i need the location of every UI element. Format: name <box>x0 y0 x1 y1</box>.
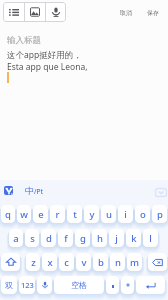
button[interactable]: e <box>33 205 48 223</box>
staticText: k <box>131 232 137 245</box>
button[interactable]: j <box>109 229 124 247</box>
button[interactable]: Comma <box>106 276 119 294</box>
button[interactable]: 取消 <box>117 7 135 19</box>
staticText: f <box>64 232 68 245</box>
button[interactable]: c <box>59 253 74 271</box>
button[interactable]: q <box>1 205 15 223</box>
button[interactable]: Enter <box>136 276 165 294</box>
staticText: m <box>130 256 139 269</box>
button[interactable]: r <box>50 205 65 223</box>
staticText: h <box>97 232 103 245</box>
button[interactable]: g <box>75 229 90 247</box>
staticText: 输入标题 <box>7 35 41 46</box>
staticText: a <box>13 232 19 245</box>
staticText: q <box>5 208 11 221</box>
button[interactable]: Numbers <box>19 276 35 294</box>
staticText: y <box>89 208 95 221</box>
staticText: s <box>30 232 35 245</box>
button[interactable]: x <box>42 253 57 271</box>
staticText: 保存 <box>147 9 159 17</box>
button[interactable]: Backspace <box>148 253 167 271</box>
button[interactable]: a <box>9 229 23 247</box>
staticText: l <box>149 232 152 245</box>
staticText: o <box>140 208 146 221</box>
button[interactable]: Voice input <box>37 276 52 294</box>
button[interactable]: o <box>135 205 150 223</box>
button[interactable]: Input method <box>4 186 13 195</box>
staticText: i <box>124 208 127 221</box>
staticText: w <box>20 208 28 221</box>
button[interactable]: y <box>84 205 99 223</box>
button[interactable]: b <box>93 253 108 271</box>
staticText: b <box>98 256 104 269</box>
button[interactable]: d <box>41 229 56 247</box>
staticText: t <box>73 208 77 221</box>
staticText: j <box>115 232 118 245</box>
staticText: c <box>64 256 69 269</box>
button[interactable]: Voice input <box>46 2 66 22</box>
staticText: /Pt <box>34 187 43 196</box>
button[interactable]: u <box>101 205 116 223</box>
staticText: d <box>46 232 52 245</box>
button[interactable]: 中 <box>25 185 43 196</box>
button[interactable]: Shift <box>1 253 20 271</box>
button[interactable]: n <box>110 253 125 271</box>
staticText: e <box>38 208 44 221</box>
button[interactable]: Hide keyboard <box>155 188 167 197</box>
staticText: g <box>80 232 86 245</box>
staticText: u <box>106 208 112 221</box>
button[interactable]: k <box>126 229 141 247</box>
button[interactable]: w <box>17 205 31 223</box>
staticText: p <box>157 208 163 221</box>
button[interactable]: s <box>25 229 39 247</box>
button[interactable]: p <box>152 205 167 223</box>
button[interactable]: z <box>26 253 40 271</box>
button[interactable]: l <box>143 229 158 247</box>
button[interactable]: h <box>92 229 107 247</box>
button[interactable]: 保存 <box>144 7 162 19</box>
staticText: 空格 <box>71 280 87 290</box>
button[interactable]: f <box>58 229 73 247</box>
button[interactable]: m <box>127 253 142 271</box>
staticText: 123 <box>21 280 34 290</box>
staticText: n <box>115 256 121 269</box>
staticText: z <box>31 256 36 269</box>
button[interactable]: t <box>67 205 82 223</box>
button[interactable]: Shuangpin <box>1 276 17 294</box>
staticText: 中 <box>25 185 34 196</box>
button[interactable]: v <box>76 253 91 271</box>
staticText: 双 <box>5 280 13 290</box>
button[interactable]: i <box>118 205 133 223</box>
button[interactable]: Period <box>121 276 134 294</box>
button[interactable]: Space <box>54 276 104 294</box>
staticText: v <box>81 256 87 269</box>
staticText: 取消 <box>120 9 132 17</box>
staticText: r <box>55 208 60 221</box>
staticText: 这个app挺好用的， Esta app que Leona, <box>7 49 88 73</box>
staticText: x <box>47 256 53 269</box>
button[interactable]: Bullet list <box>3 2 24 22</box>
button[interactable]: Insert image <box>25 2 45 22</box>
